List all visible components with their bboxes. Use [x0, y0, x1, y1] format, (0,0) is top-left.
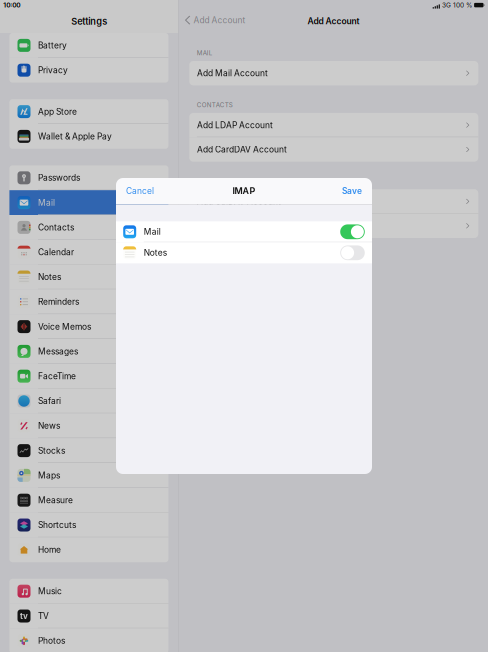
staticText: Voice Memos — [38, 322, 91, 331]
staticText: Music — [38, 586, 62, 596]
button[interactable]: News — [9, 413, 168, 438]
button[interactable]: Photos — [9, 628, 168, 652]
button[interactable]: App Store — [9, 99, 168, 124]
button[interactable]: Add Account — [182, 14, 249, 27]
staticText: Home — [38, 545, 61, 554]
staticText: 100 % — [453, 1, 472, 9]
staticText: Messages — [38, 347, 78, 356]
staticText: Add CalDAV Account — [197, 197, 281, 206]
staticText: Passwords — [38, 173, 80, 182]
button[interactable]: tv — [9, 604, 168, 628]
staticText: Notes — [144, 248, 167, 257]
staticText: Maps — [38, 471, 60, 480]
button[interactable]: Shortcuts — [9, 513, 168, 537]
button[interactable]: Add CalDAV Account — [189, 189, 478, 214]
staticText: Stocks — [38, 446, 65, 455]
button[interactable]: Save — [338, 178, 366, 204]
staticText: Privacy — [38, 65, 68, 75]
staticText: Calendar — [38, 247, 74, 257]
staticText: FaceTime — [38, 371, 76, 381]
button[interactable]: Add CardDAV Account — [189, 137, 478, 162]
button[interactable]: Battery — [9, 33, 168, 58]
button[interactable]: Reminders — [9, 289, 168, 314]
button[interactable]: Add LDAP Account — [189, 113, 478, 137]
staticText: Mail — [38, 198, 55, 207]
staticText: IMAP — [232, 186, 255, 196]
staticText: Battery — [38, 41, 67, 50]
staticText: Shortcuts — [38, 520, 76, 530]
staticText: Add Account — [194, 15, 246, 25]
staticText: MAIL — [197, 49, 213, 56]
button[interactable]: Mail — [116, 221, 372, 242]
button[interactable]: Maps — [9, 463, 168, 488]
button[interactable]: Notes — [9, 265, 168, 289]
button[interactable]: Calendar — [9, 240, 168, 265]
button[interactable]: Voice Memos — [9, 314, 168, 339]
button[interactable]: Safari — [9, 389, 168, 413]
staticText: Settings — [71, 16, 107, 27]
staticText: 10:00 — [3, 1, 20, 9]
staticText: Cancel — [126, 186, 154, 196]
staticText: Safari — [38, 396, 61, 406]
staticText: 3G — [442, 1, 451, 9]
staticText: TV — [38, 611, 49, 621]
button[interactable]: Wallet & Apple Pay — [9, 124, 168, 149]
staticText: Measure — [38, 495, 73, 505]
button[interactable]: FaceTime — [9, 364, 168, 389]
button[interactable]: Add Mail Account — [189, 61, 478, 85]
button[interactable]: Stocks — [9, 438, 168, 463]
button[interactable]: Add Subscribed Calendar — [189, 214, 478, 238]
staticText: tv — [20, 611, 28, 620]
staticText: Mail — [144, 227, 161, 236]
staticText: Contacts — [38, 223, 74, 232]
staticText: Reminders — [38, 297, 79, 306]
staticText: CONTACTS — [197, 101, 233, 108]
button[interactable]: Contacts — [9, 215, 168, 240]
button[interactable]: Messages — [9, 339, 168, 364]
staticText: Save — [342, 186, 362, 196]
staticText: News — [38, 421, 60, 430]
staticText: Wallet & Apple Pay — [38, 132, 112, 141]
button[interactable]: Privacy — [9, 58, 168, 83]
button[interactable]: Home — [9, 537, 168, 562]
button[interactable]: Measure — [9, 488, 168, 513]
staticText: Add Mail Account — [197, 68, 268, 78]
staticText: Add LDAP Account — [197, 120, 273, 130]
button[interactable]: Cancel — [122, 178, 158, 204]
staticText: Notes — [38, 272, 61, 282]
staticText: Add CardDAV Account — [197, 145, 287, 154]
button[interactable]: Mail — [9, 190, 168, 215]
staticText: Add Account — [307, 16, 359, 26]
button[interactable]: Music — [9, 579, 168, 604]
button[interactable]: Notes — [116, 242, 372, 263]
staticText: App Store — [38, 107, 77, 116]
staticText: Photos — [38, 636, 65, 645]
button[interactable]: Passwords — [9, 165, 168, 190]
